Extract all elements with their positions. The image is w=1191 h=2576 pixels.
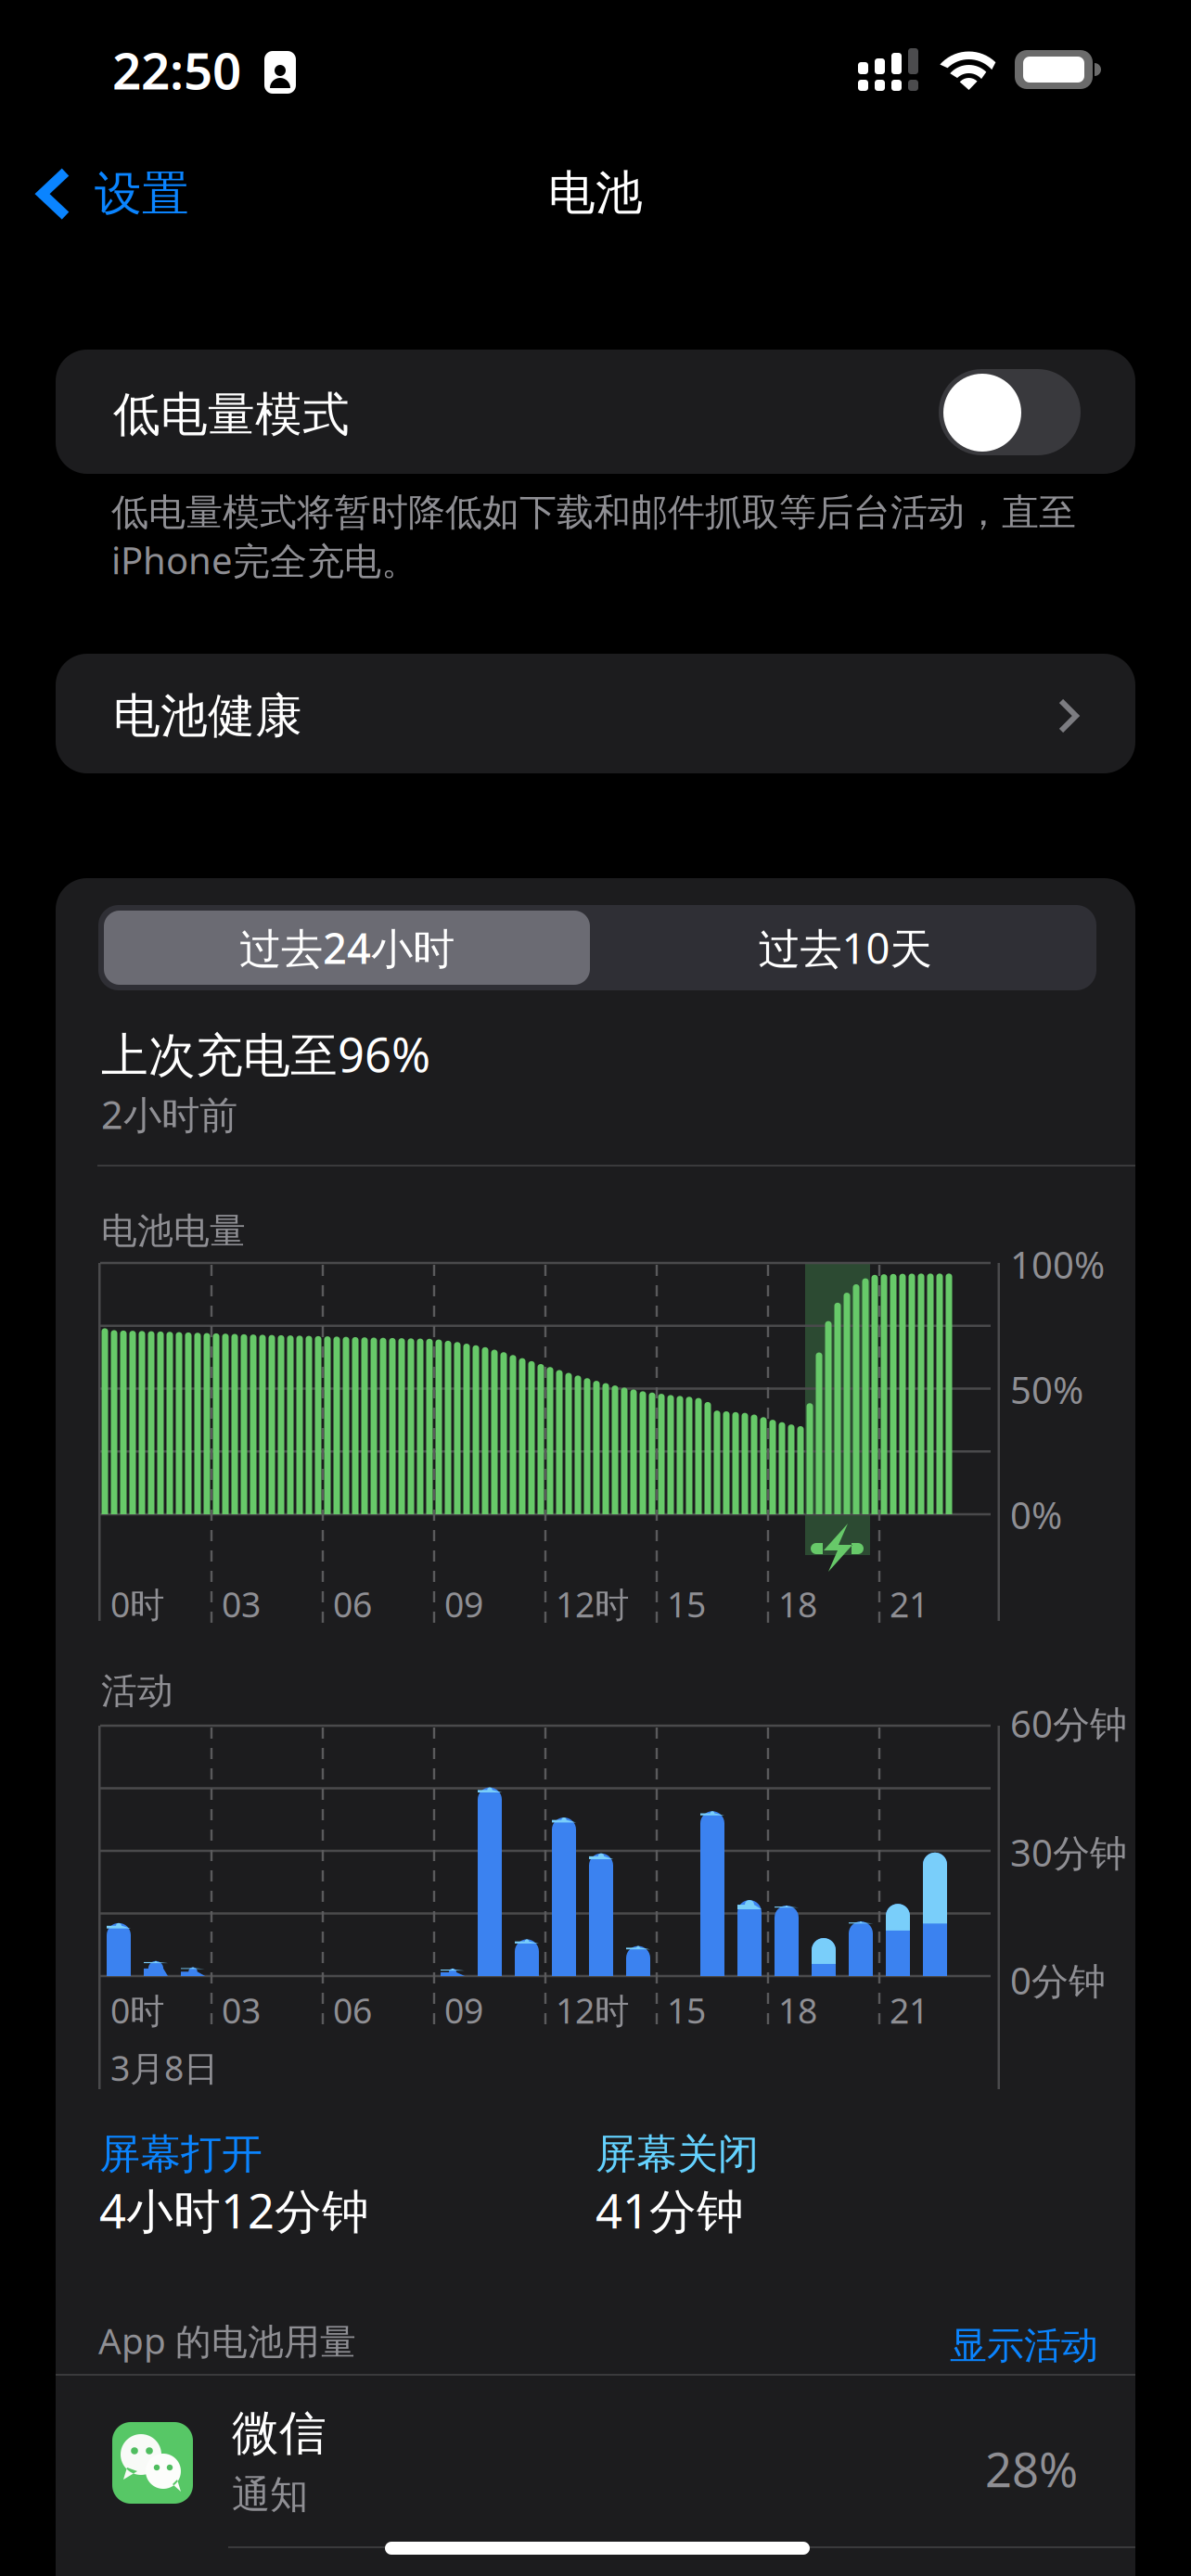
staticText: 过去24小时 [239,920,455,976]
staticText: 09 [444,1987,483,2033]
staticText: 显示活动 [950,2323,1098,2368]
staticText: 低电量模式将暂时降低如下载和邮件抓取等后台活动，直至iPhone完全充电。 [111,490,1076,585]
staticText: 电池健康 [113,687,302,745]
button[interactable]: 过去24小时 [104,911,590,985]
staticText: 22:50 [112,36,241,103]
staticText: 3月8日 [110,2045,218,2091]
staticText: 电池电量 [101,1209,246,1253]
staticText: 4小时12分钟 [99,2179,369,2242]
staticText: 0分钟 [1010,1956,1106,2005]
staticText: 28% [985,2438,1078,2500]
staticText: 微信 [232,2404,327,2462]
staticText: 0时 [110,1581,164,1627]
staticText: 低电量模式 [113,386,350,443]
staticText: 21 [890,1581,928,1627]
staticText: 2小时前 [101,1089,237,1140]
staticText: 0% [1010,1490,1062,1539]
staticText: 12时 [556,1581,629,1627]
staticText: 09 [444,1581,483,1627]
staticText: 12时 [556,1987,629,2033]
staticText: 03 [222,1581,261,1627]
button[interactable]: 低电量模式 [56,350,1135,474]
staticText: 通知 [232,2471,308,2518]
button[interactable]: 微信 [56,2376,1135,2543]
staticText: 屏幕打开 [99,2129,263,2179]
staticText: 上次充电至96% [101,1023,430,1085]
button[interactable]: 显示活动 [939,2314,1109,2378]
staticText: 屏幕关闭 [595,2129,759,2179]
staticText: 06 [333,1987,372,2033]
staticText: 15 [667,1987,706,2033]
staticText: 过去10天 [758,920,932,976]
staticText: 活动 [101,1669,173,1713]
staticText: 21 [890,1987,928,2033]
staticText: 100% [1010,1240,1105,1289]
staticText: App 的电池用量 [98,2316,356,2364]
staticText: 41分钟 [595,2179,744,2242]
staticText: 15 [667,1581,706,1627]
staticText: 0时 [110,1987,164,2033]
staticText: 50% [1010,1365,1083,1414]
staticText: 30分钟 [1010,1828,1127,1877]
staticText: 03 [222,1987,261,2033]
staticText: 电池 [548,164,643,222]
staticText: 设置 [95,165,189,223]
staticText: 60分钟 [1010,1699,1127,1748]
button[interactable]: 过去10天 [599,911,1091,985]
staticText: 18 [778,1987,817,2033]
button[interactable]: 电池健康 [56,654,1135,773]
button[interactable]: 设置 [15,145,211,243]
staticText: 06 [333,1581,372,1627]
staticText: 18 [778,1581,817,1627]
